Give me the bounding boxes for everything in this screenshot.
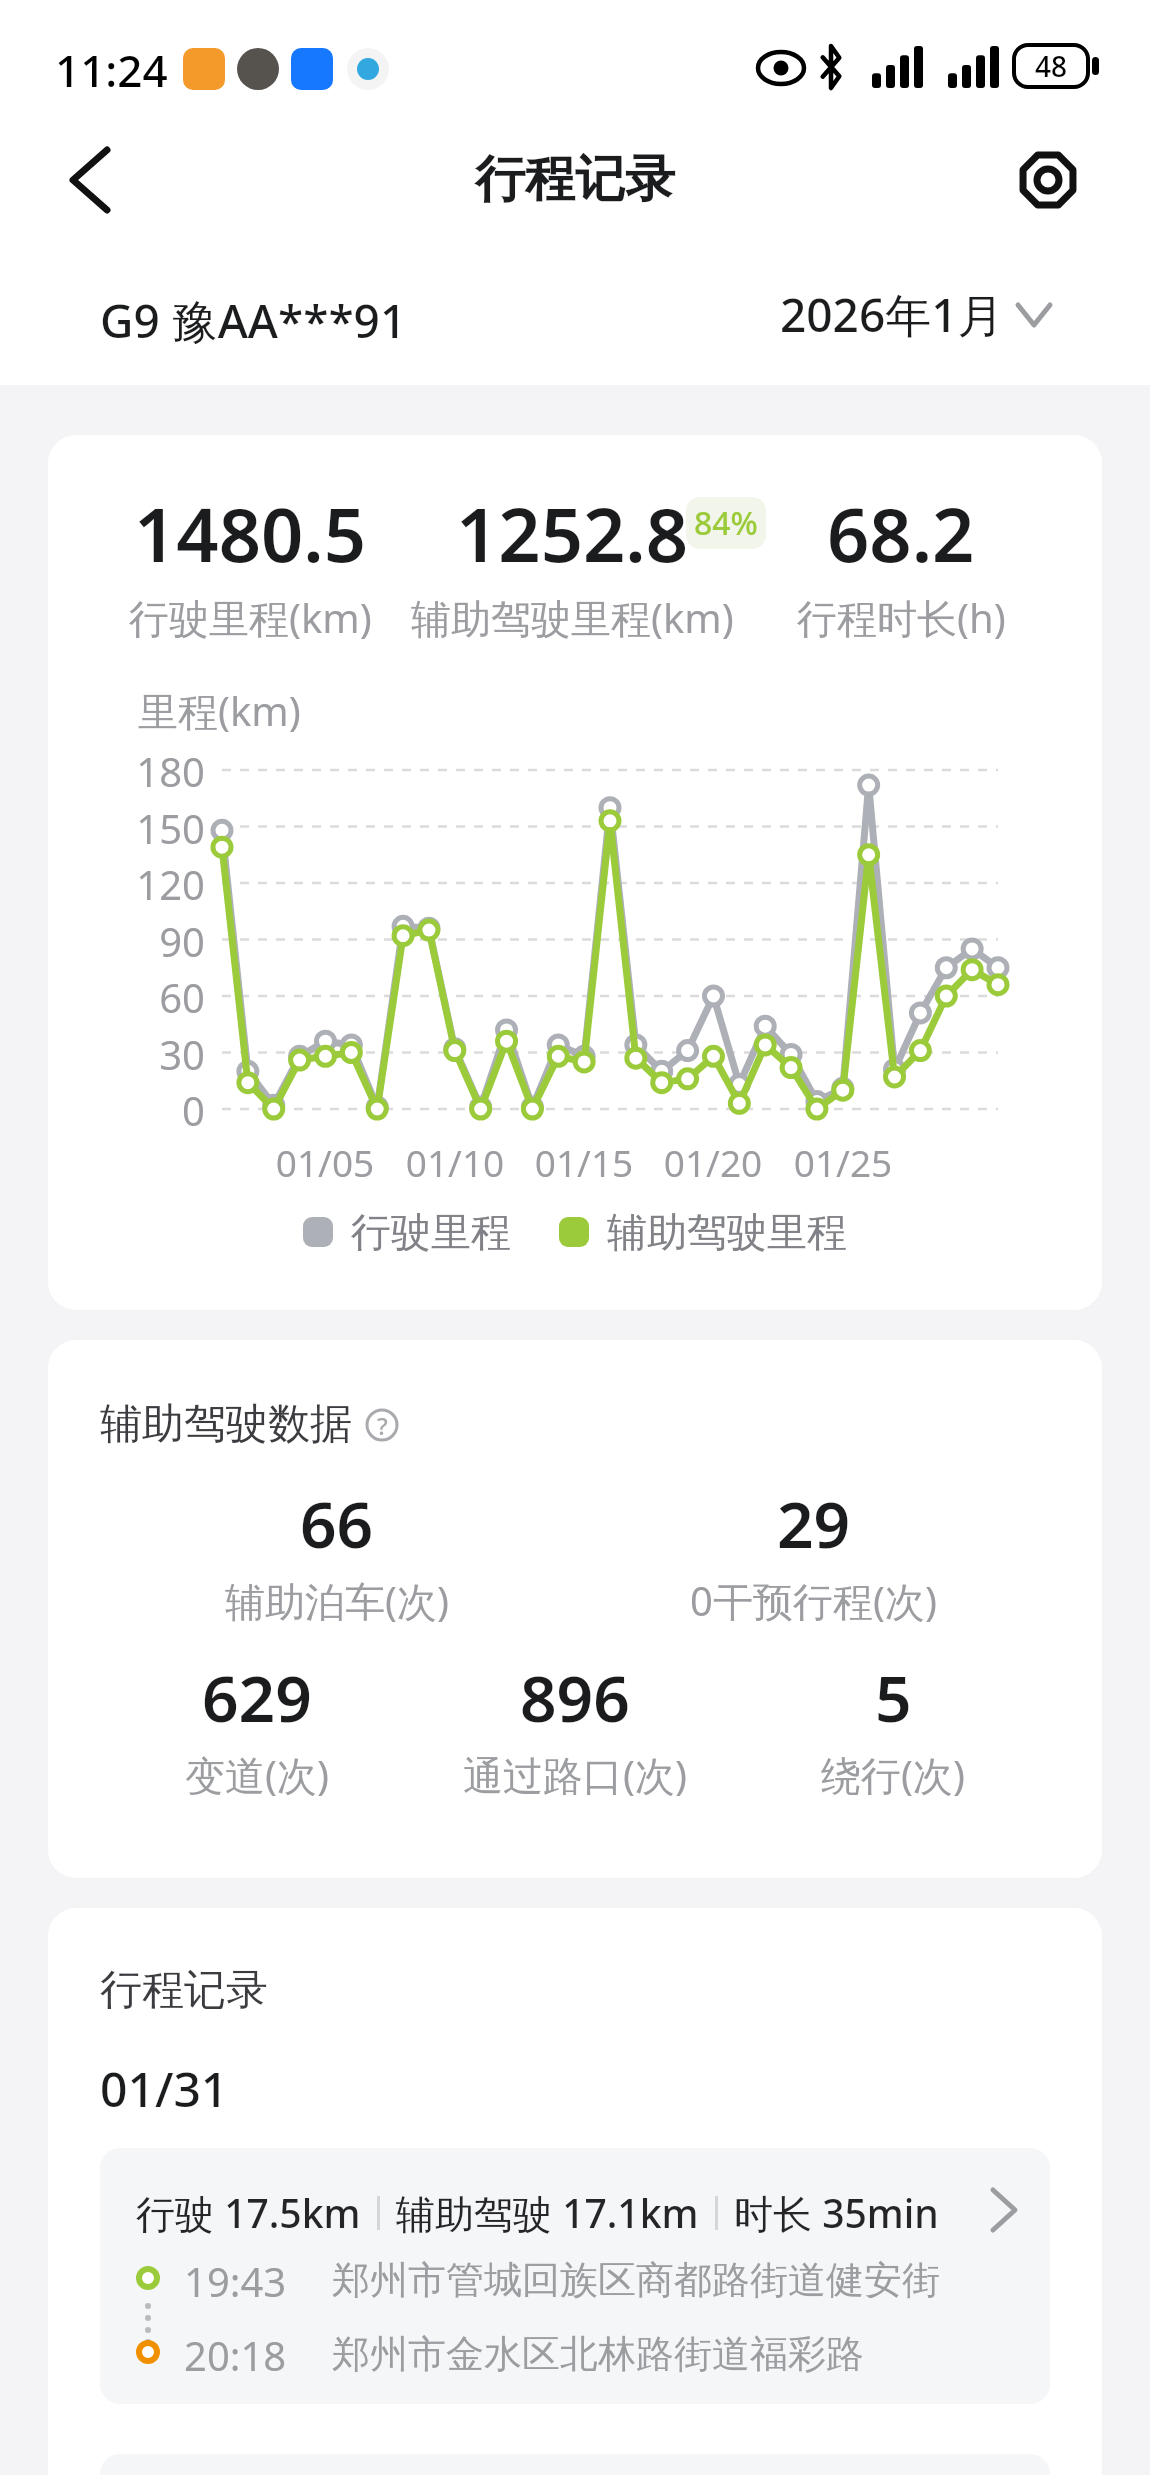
staticText: 绕行(次) (821, 1747, 965, 1802)
staticText: 行驶 17.5km (136, 2186, 361, 2239)
staticText: 郑州市管城回族区商都路街道健安街 (332, 2256, 940, 2304)
staticText: 行驶里程 (351, 1207, 511, 1257)
staticText: 时长 35min (734, 2186, 939, 2239)
button[interactable]: 2026年1月 (780, 283, 1050, 346)
staticText: 01/15 (504, 1137, 664, 1187)
staticText: 0 (85, 1083, 205, 1137)
staticText: 辅助驾驶数据 (100, 1398, 352, 1451)
staticText: 行程时长(h) (797, 590, 1006, 645)
staticText: 20:18 (184, 2328, 287, 2382)
staticText: 629 (202, 1654, 312, 1741)
staticText: 1252.8 (456, 483, 689, 584)
button[interactable]: 行驶 17.5km (100, 2148, 1050, 2404)
staticText: 01/25 (763, 1137, 923, 1187)
staticText: 60 (85, 970, 205, 1024)
staticText: 01/10 (375, 1137, 535, 1187)
staticText: 2026年1月 (780, 283, 1004, 346)
staticText: 896 (520, 1654, 630, 1741)
staticText: 里程(km) (138, 683, 301, 738)
staticText: 01/05 (245, 1137, 405, 1187)
staticText: 行程记录 (100, 1964, 268, 2017)
staticText: 辅助驾驶 17.1km (396, 2186, 699, 2239)
staticText: 通过路口(次) (463, 1747, 687, 1802)
staticText: 行程记录 (475, 148, 675, 211)
staticText: 66 (300, 1480, 374, 1567)
staticText: 150 (85, 801, 205, 855)
staticText: 行驶里程(km) (129, 590, 372, 645)
staticText: 郑州市金水区北林路街道福彩路 (332, 2330, 864, 2378)
staticText: 01/31 (100, 2056, 229, 2121)
staticText: 29 (777, 1480, 851, 1567)
staticText: 30 (85, 1027, 205, 1081)
staticText: 5 (875, 1654, 912, 1741)
staticText: 120 (85, 857, 205, 911)
staticText: 变道(次) (185, 1747, 329, 1802)
staticText: 84% (694, 501, 758, 545)
staticText: 01/20 (633, 1137, 793, 1187)
staticText: 90 (85, 914, 205, 968)
staticText: 68.2 (827, 483, 975, 584)
staticText: 辅助泊车(次) (225, 1573, 449, 1628)
staticText: 0干预行程(次) (690, 1573, 937, 1628)
button[interactable] (50, 140, 130, 220)
staticText: 1480.5 (134, 483, 367, 584)
staticText: 180 (85, 744, 205, 798)
staticText: 11:24 (55, 40, 168, 100)
button[interactable] (1008, 140, 1088, 220)
staticText: ? (377, 1409, 388, 1442)
staticText: G9 豫AA***91 (100, 289, 407, 352)
staticText: 辅助驾驶里程(km) (411, 590, 734, 645)
staticText: 19:43 (184, 2254, 287, 2308)
staticText: 辅助驾驶里程 (607, 1207, 847, 1257)
staticText: 48 (1035, 47, 1068, 85)
